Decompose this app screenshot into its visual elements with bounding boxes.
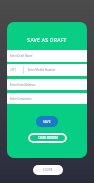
button[interactable]: +971 xyxy=(7,64,87,76)
staticText: SAVE xyxy=(43,120,51,124)
staticText: Enter Comments xyxy=(10,97,32,101)
staticText: CLOSE xyxy=(43,168,53,172)
staticText: Enter Mobile Number xyxy=(28,68,56,72)
staticText: +971 xyxy=(10,68,16,72)
button[interactable]: SAVE xyxy=(36,116,58,127)
button[interactable]: Enter Comments xyxy=(7,93,87,104)
staticText: CLEAR SESSION xyxy=(38,136,58,140)
staticText: Enter Draft Name xyxy=(10,54,33,58)
staticText: SAVE AS DRAFT xyxy=(7,37,87,44)
button[interactable]: CLOSE xyxy=(33,165,63,175)
button[interactable]: Enter Email Address xyxy=(7,79,87,90)
staticText: Enter Email Address xyxy=(10,83,36,87)
button[interactable]: Enter Draft Name xyxy=(7,50,87,62)
button[interactable]: CLEAR SESSION xyxy=(28,133,67,143)
